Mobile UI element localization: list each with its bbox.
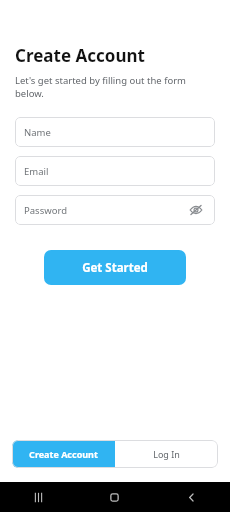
button[interactable]: Recent apps	[0, 482, 76, 512]
button[interactable]: Name	[15, 117, 215, 147]
button[interactable]: Get Started	[44, 250, 186, 285]
button[interactable]: Home	[76, 482, 153, 512]
staticText: Create Account	[29, 448, 98, 460]
button[interactable]: Show password	[186, 200, 206, 220]
button[interactable]: Create Account	[12, 440, 115, 468]
staticText: Log In	[153, 448, 180, 460]
staticText: Password	[24, 204, 67, 217]
button[interactable]: Back	[153, 482, 230, 512]
staticText: Name	[24, 126, 51, 139]
button[interactable]: Email	[15, 156, 215, 186]
staticText: Get Started	[82, 260, 148, 276]
staticText: Email	[24, 165, 49, 178]
button[interactable]: Password	[15, 195, 215, 225]
staticText: Create Account	[15, 44, 145, 67]
staticText: Let's get started by filling out the for…	[15, 74, 215, 100]
button[interactable]: Log In	[115, 440, 218, 468]
